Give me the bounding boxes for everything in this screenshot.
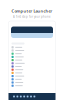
staticText: A first step for your phone (13, 15, 51, 18)
staticText: Computer Launcher (11, 8, 52, 14)
